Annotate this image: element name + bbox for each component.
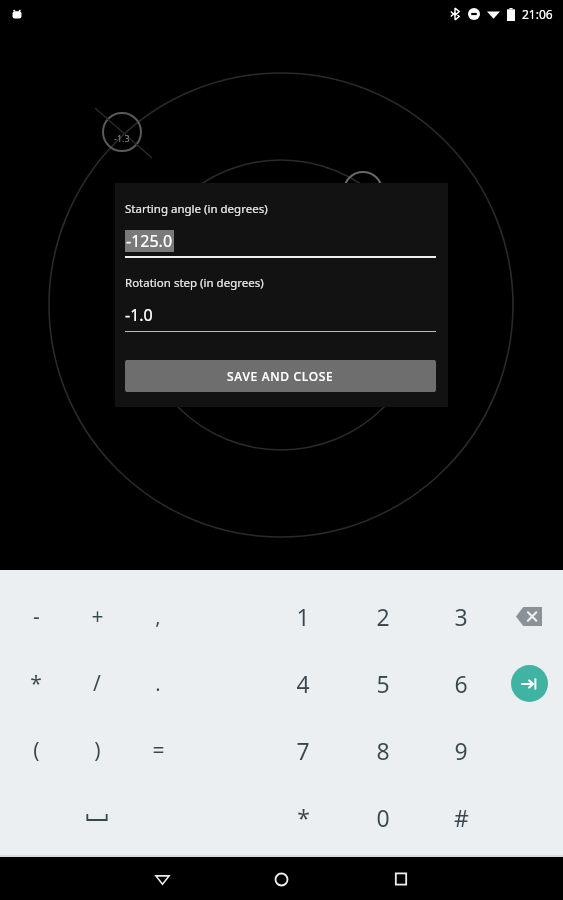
button[interactable]: / xyxy=(69,657,125,709)
staticText: ) xyxy=(94,736,101,765)
staticText: 21:06 xyxy=(522,6,553,22)
staticText: , xyxy=(155,603,161,630)
button[interactable]: -1.0 xyxy=(125,304,436,332)
button[interactable]: Enter xyxy=(501,657,557,709)
button[interactable]: - xyxy=(8,590,64,642)
button[interactable]: 7 xyxy=(273,724,333,776)
button[interactable]: 9 xyxy=(431,724,491,776)
staticText: Starting angle (in degrees) xyxy=(125,201,268,217)
staticText: -125.0 xyxy=(126,230,173,252)
staticText: -1.3 xyxy=(114,132,130,144)
staticText: 7 xyxy=(296,735,310,766)
button[interactable]: + xyxy=(69,590,125,642)
staticText: # xyxy=(454,802,469,833)
button[interactable]: -125.0 xyxy=(125,230,436,258)
staticText: SAVE AND CLOSE xyxy=(227,368,334,384)
button[interactable]: 3 xyxy=(431,590,491,642)
staticText: - xyxy=(33,602,40,631)
staticText: 3 xyxy=(454,601,468,632)
staticText: -1.0 xyxy=(125,304,153,326)
button[interactable]: # xyxy=(431,791,491,843)
button[interactable]: 6 xyxy=(431,657,491,709)
staticText: ( xyxy=(33,736,40,765)
button[interactable]: * xyxy=(273,791,333,843)
button[interactable]: SAVE AND CLOSE xyxy=(125,360,436,392)
staticText: 8 xyxy=(376,735,390,766)
staticText: 1 xyxy=(296,601,310,632)
staticText: = xyxy=(152,736,165,765)
staticText: * xyxy=(297,802,310,833)
button[interactable]: 0 xyxy=(353,791,413,843)
button[interactable]: * xyxy=(8,657,64,709)
button[interactable]: 4 xyxy=(273,657,333,709)
button[interactable]: 8 xyxy=(353,724,413,776)
button[interactable]: . xyxy=(130,657,186,709)
button[interactable]: 2 xyxy=(353,590,413,642)
staticText: 0 xyxy=(376,802,390,833)
button[interactable]: = xyxy=(130,724,186,776)
button[interactable]: Home xyxy=(257,866,305,892)
staticText: 2 xyxy=(376,601,390,632)
button[interactable]: ( xyxy=(8,724,64,776)
button[interactable]: Backspace xyxy=(501,590,557,642)
staticText: Rotation step (in degrees) xyxy=(125,275,264,291)
button[interactable]: , xyxy=(130,590,186,642)
staticText: 9 xyxy=(454,735,468,766)
button[interactable] xyxy=(69,791,125,843)
button[interactable]: 1 xyxy=(273,590,333,642)
staticText: . xyxy=(155,670,161,697)
staticText: / xyxy=(93,669,101,698)
staticText: 5 xyxy=(376,668,390,699)
button[interactable]: Recent apps xyxy=(377,866,425,892)
staticText: 4 xyxy=(296,668,310,699)
button[interactable]: Back xyxy=(138,866,186,892)
button[interactable]: ) xyxy=(69,724,125,776)
button[interactable]: 5 xyxy=(353,657,413,709)
staticText: + xyxy=(91,602,104,631)
staticText: * xyxy=(30,669,42,698)
staticText: 6 xyxy=(454,668,468,699)
